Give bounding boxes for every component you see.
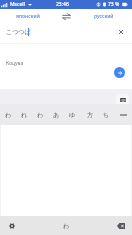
button[interactable]: わ — [23, 216, 109, 235]
button[interactable]: わ — [0, 104, 16, 125]
button[interactable]: японский — [0, 9, 56, 23]
staticText: わ — [5, 111, 12, 119]
button[interactable]: Switch keyboard — [116, 94, 129, 106]
staticText: 23:46 — [56, 1, 69, 8]
staticText: あ — [53, 111, 60, 119]
button[interactable]: ゆ — [64, 104, 81, 125]
button[interactable]: あ — [48, 104, 64, 125]
button[interactable]: русский — [76, 9, 132, 23]
staticText: ち — [103, 111, 110, 119]
button[interactable]: Backspace — [109, 216, 132, 235]
button[interactable]: Swap languages — [56, 9, 76, 23]
button[interactable]: ち — [98, 104, 115, 125]
button[interactable]: わ — [32, 104, 48, 125]
staticText: 73 % — [108, 1, 120, 8]
staticText: Коцува — [6, 60, 24, 67]
staticText: Mscell — [10, 1, 26, 8]
button[interactable]: Clear text — [115, 26, 127, 38]
staticText: ゆ — [69, 111, 76, 119]
staticText: こつつぱ — [6, 28, 31, 36]
button[interactable]: Settings — [0, 216, 23, 235]
button[interactable]: れ — [16, 104, 32, 125]
staticText: れ — [21, 111, 28, 119]
staticText: 方 — [87, 111, 93, 119]
staticText: русский — [94, 13, 114, 20]
button[interactable]: Expand suggestions — [115, 104, 132, 125]
staticText: японский — [16, 13, 40, 20]
button[interactable]: Translate — [114, 67, 125, 78]
button[interactable]: 方 — [81, 104, 98, 125]
staticText: わ — [37, 111, 44, 119]
staticText: わ — [63, 222, 70, 230]
